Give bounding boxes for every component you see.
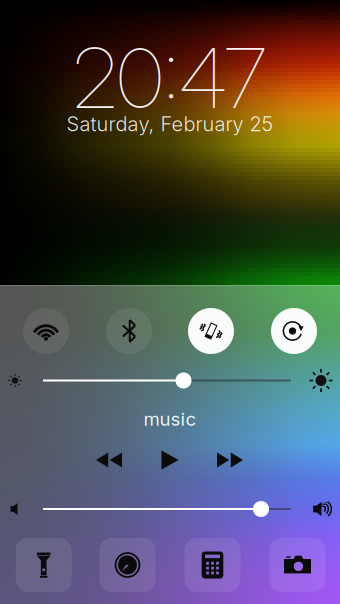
button[interactable]: Wi-Fi bbox=[18, 303, 74, 359]
button[interactable]: Previous track bbox=[87, 441, 131, 479]
staticText: Saturday, February 25 bbox=[66, 112, 273, 136]
button[interactable]: Next track bbox=[208, 441, 252, 479]
button[interactable]: Play bbox=[148, 441, 192, 479]
button[interactable]: Flashlight bbox=[16, 538, 72, 592]
button[interactable]: Silent mode bbox=[183, 303, 239, 359]
button[interactable]: Camera bbox=[269, 538, 325, 592]
button[interactable]: Timer bbox=[99, 538, 155, 592]
button[interactable]: Bluetooth bbox=[101, 303, 157, 359]
staticText: music bbox=[143, 408, 196, 430]
staticText: 20:47 bbox=[73, 28, 267, 128]
button[interactable]: Rotation lock bbox=[266, 303, 322, 359]
button[interactable]: Calculator bbox=[184, 538, 240, 592]
